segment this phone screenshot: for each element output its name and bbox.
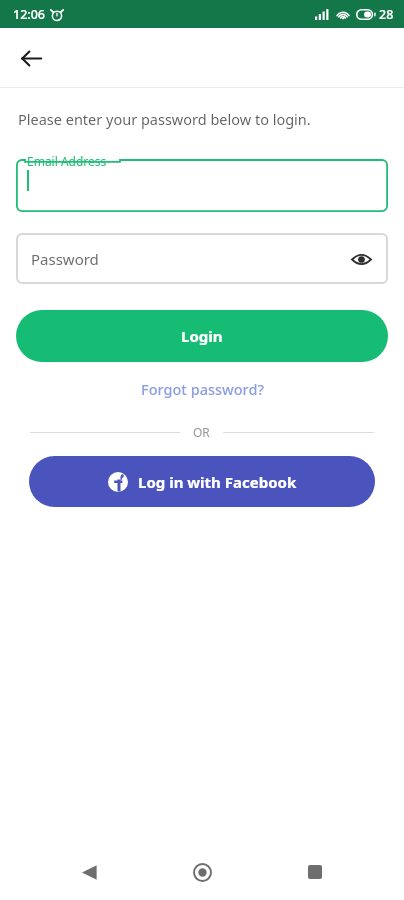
button[interactable]: Email Address — [16, 151, 388, 212]
button[interactable]: Forgot password? — [131, 375, 274, 403]
button[interactable]: Recent apps — [291, 848, 339, 896]
button[interactable]: Login — [16, 310, 388, 362]
staticText: 28 — [379, 6, 394, 23]
button[interactable]: Back — [65, 848, 113, 896]
staticText: Please enter your password below to logi… — [18, 109, 311, 129]
staticText: Forgot password? — [141, 379, 264, 399]
button[interactable]: Show password — [346, 244, 376, 274]
button[interactable]: Back — [12, 39, 50, 77]
button[interactable]: Home — [178, 848, 226, 896]
staticText: Log in with Facebook — [138, 472, 297, 492]
staticText: 12:06 — [13, 6, 46, 23]
staticText: Password — [31, 249, 99, 269]
staticText: Email Address — [27, 153, 107, 169]
staticText: OR — [193, 424, 210, 440]
staticText: Login — [181, 326, 223, 346]
button[interactable]: Log in with Facebook — [29, 456, 375, 507]
button[interactable]: Password — [16, 233, 388, 284]
